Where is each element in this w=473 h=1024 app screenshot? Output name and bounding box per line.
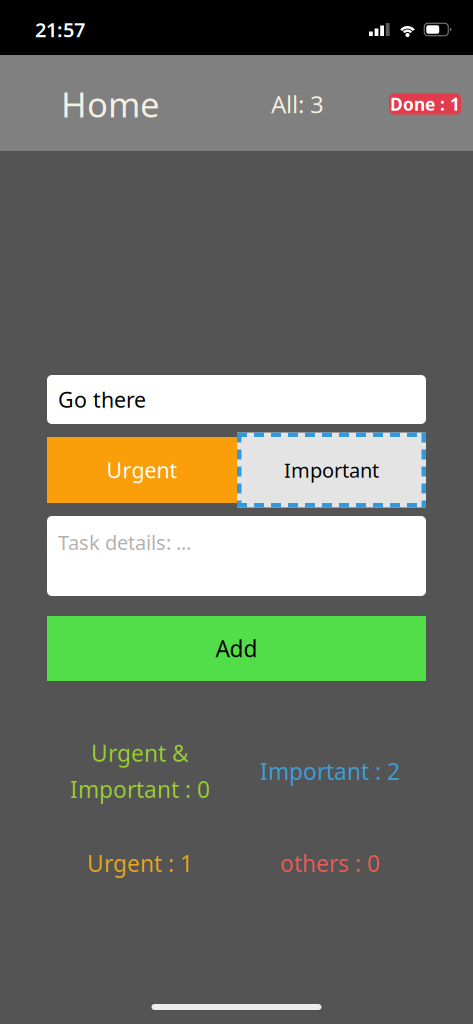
button[interactable]: Add (47, 616, 426, 681)
staticText: 21:57 (35, 16, 85, 43)
staticText: Urgent (106, 456, 177, 484)
button[interactable]: Urgent (47, 437, 237, 503)
staticText: Task details: ... (58, 529, 191, 556)
button[interactable]: Done : 1 (389, 93, 461, 114)
staticText: Done : 1 (390, 92, 460, 115)
button[interactable]: Go there (47, 375, 426, 424)
staticText: Important : 0 (70, 774, 210, 804)
staticText: Add (215, 633, 257, 663)
staticText: Urgent : 1 (87, 848, 193, 878)
staticText: Important : 2 (260, 756, 400, 786)
staticText: others : 0 (280, 848, 380, 878)
staticText: Important (284, 457, 379, 483)
button[interactable]: Task details: ... (47, 516, 426, 596)
staticText: All: 3 (271, 88, 324, 120)
staticText: Urgent & (91, 738, 189, 768)
staticText: Home (61, 81, 160, 127)
staticText: Go there (58, 385, 146, 414)
button[interactable]: Important (237, 432, 426, 507)
